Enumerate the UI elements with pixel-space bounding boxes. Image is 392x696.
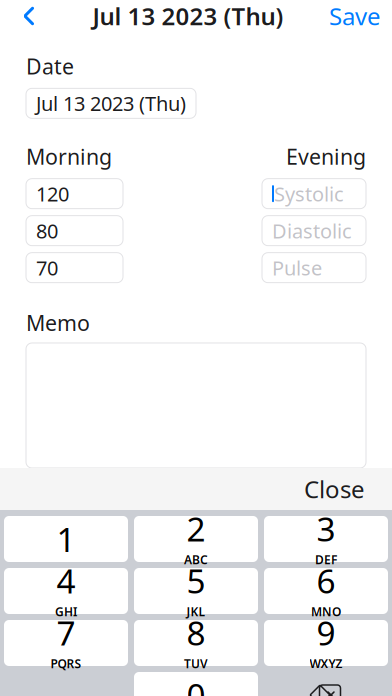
staticText: Pulse xyxy=(272,254,322,281)
staticText: MNO xyxy=(311,604,341,620)
button[interactable]: 0 xyxy=(134,672,258,696)
button[interactable]: 9 xyxy=(264,620,388,666)
button[interactable]: 5 xyxy=(134,568,258,614)
staticText: 120 xyxy=(36,180,69,207)
staticText: Systolic xyxy=(274,180,344,207)
button[interactable]: Jul 13 2023 (Thu) xyxy=(26,88,196,118)
button[interactable]: 80 xyxy=(26,216,123,246)
button[interactable]: 1 xyxy=(4,516,128,562)
staticText: Memo xyxy=(26,309,90,337)
staticText: Date xyxy=(26,52,74,80)
staticText: Jul 13 2023 (Thu) xyxy=(36,90,186,117)
button[interactable]: 6 xyxy=(264,568,388,614)
staticText: GHI xyxy=(55,604,77,620)
staticText: 7 xyxy=(56,610,75,655)
button[interactable]: Back xyxy=(7,0,51,38)
button[interactable]: Save xyxy=(325,0,385,38)
button[interactable]: 2 xyxy=(134,516,258,562)
staticText: Evening xyxy=(286,142,366,171)
staticText: Diastolic xyxy=(272,217,352,244)
staticText: 70 xyxy=(36,254,58,281)
button[interactable]: 8 xyxy=(134,620,258,666)
staticText: DEF xyxy=(315,552,337,568)
staticText: 2 xyxy=(186,506,205,551)
staticText: Jul 13 2023 (Thu) xyxy=(92,0,283,32)
staticText: JKL xyxy=(186,604,205,620)
staticText: WXYZ xyxy=(309,656,342,672)
button[interactable]: 3 xyxy=(264,516,388,562)
staticText: Save xyxy=(329,0,381,32)
button[interactable]: 70 xyxy=(26,253,123,283)
staticText: 3 xyxy=(316,506,335,551)
staticText: 8 xyxy=(186,610,205,655)
button[interactable]: Delete xyxy=(264,672,388,696)
staticText: 4 xyxy=(56,558,75,603)
staticText: 0 xyxy=(186,673,205,696)
button[interactable]: Systolic xyxy=(262,179,366,209)
staticText: 5 xyxy=(186,558,205,603)
button[interactable]: 120 xyxy=(26,179,123,209)
button[interactable]: 7 xyxy=(4,620,128,666)
staticText: Close xyxy=(304,473,365,505)
button[interactable]: Close xyxy=(290,468,379,510)
staticText: 1 xyxy=(56,517,75,561)
staticText: 6 xyxy=(316,558,335,603)
staticText: PQRS xyxy=(50,656,81,672)
staticText: 9 xyxy=(316,610,335,655)
staticText: 80 xyxy=(36,217,58,244)
button[interactable]: Diastolic xyxy=(262,216,366,246)
button[interactable]: Pulse xyxy=(262,253,366,283)
button[interactable]: 4 xyxy=(4,568,128,614)
staticText: ABC xyxy=(184,552,208,568)
staticText: TUV xyxy=(184,656,208,672)
staticText: Morning xyxy=(26,142,112,171)
